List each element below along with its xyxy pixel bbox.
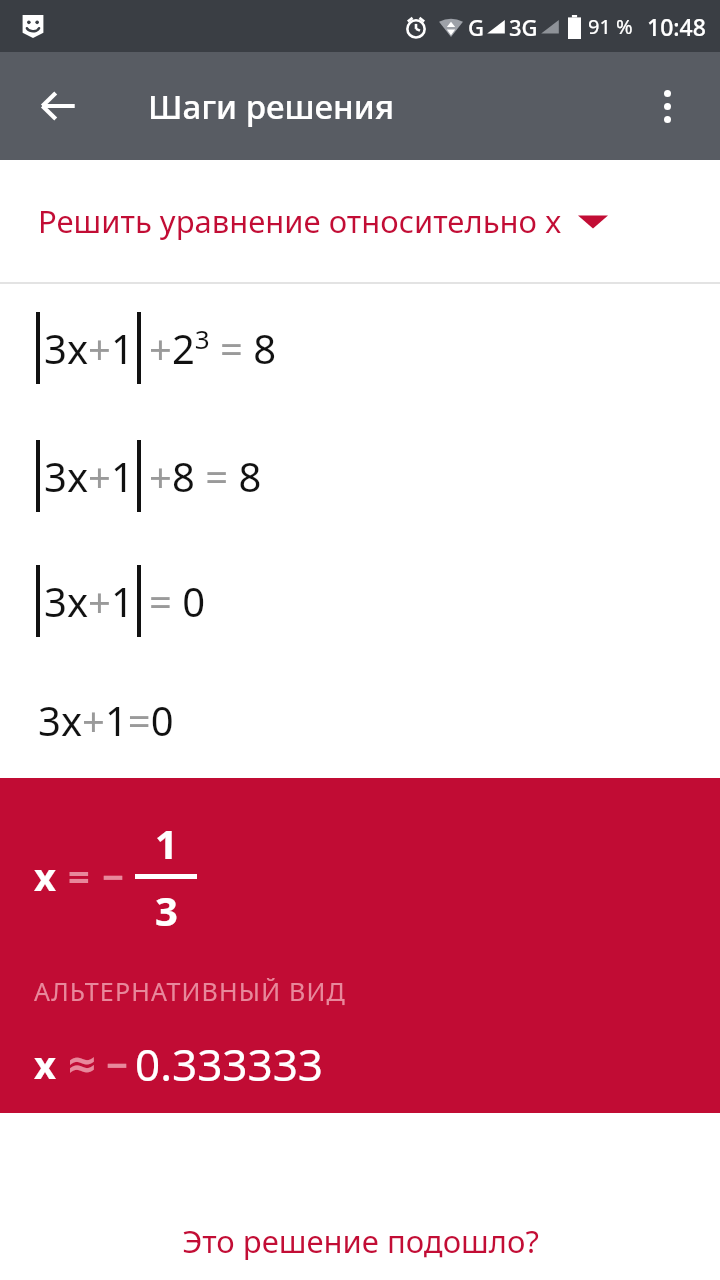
staticText: ≈ <box>66 1042 98 1086</box>
staticText: +23 = 8 <box>149 321 277 376</box>
button[interactable]: 3x+1 <box>0 284 720 412</box>
staticText: 3x+1=0 <box>38 693 174 747</box>
button[interactable]: Back <box>22 70 94 142</box>
staticText: Решить уравнение относительно x <box>38 200 562 242</box>
button[interactable]: More options <box>633 72 701 140</box>
staticText: АЛЬТЕРНАТИВНЫЙ ВИД <box>34 974 347 1008</box>
staticText: 3x+1 <box>44 449 134 503</box>
button[interactable]: 3x+1 <box>0 412 720 540</box>
button[interactable]: Это решение подошло? <box>0 1220 720 1262</box>
staticText: = 0 <box>149 574 206 628</box>
staticText: − <box>102 850 125 902</box>
staticText: +8 = 8 <box>149 449 262 503</box>
button[interactable]: 3x+1 <box>0 540 720 662</box>
staticText: x <box>34 850 56 902</box>
staticText: 3x+1 <box>44 574 134 628</box>
button[interactable]: x <box>0 778 720 1113</box>
staticText: 91 % <box>588 13 633 40</box>
staticText: Шаги решения <box>148 84 395 129</box>
staticText: x <box>34 1038 56 1090</box>
staticText: Это решение подошло? <box>182 1220 539 1262</box>
staticText: 3x+1 <box>44 321 134 375</box>
staticText: 10:48 <box>647 11 706 42</box>
staticText: 0.333333 <box>135 1034 323 1094</box>
staticText: G <box>468 12 484 42</box>
staticText: 3 <box>155 883 178 937</box>
button[interactable]: 3x+1=0 <box>0 662 720 778</box>
staticText: = <box>68 850 90 902</box>
staticText: 1 <box>155 816 178 870</box>
staticText: − <box>106 1038 129 1090</box>
button[interactable]: Решить уравнение относительно x <box>0 160 720 282</box>
staticText: 3G <box>509 12 538 42</box>
